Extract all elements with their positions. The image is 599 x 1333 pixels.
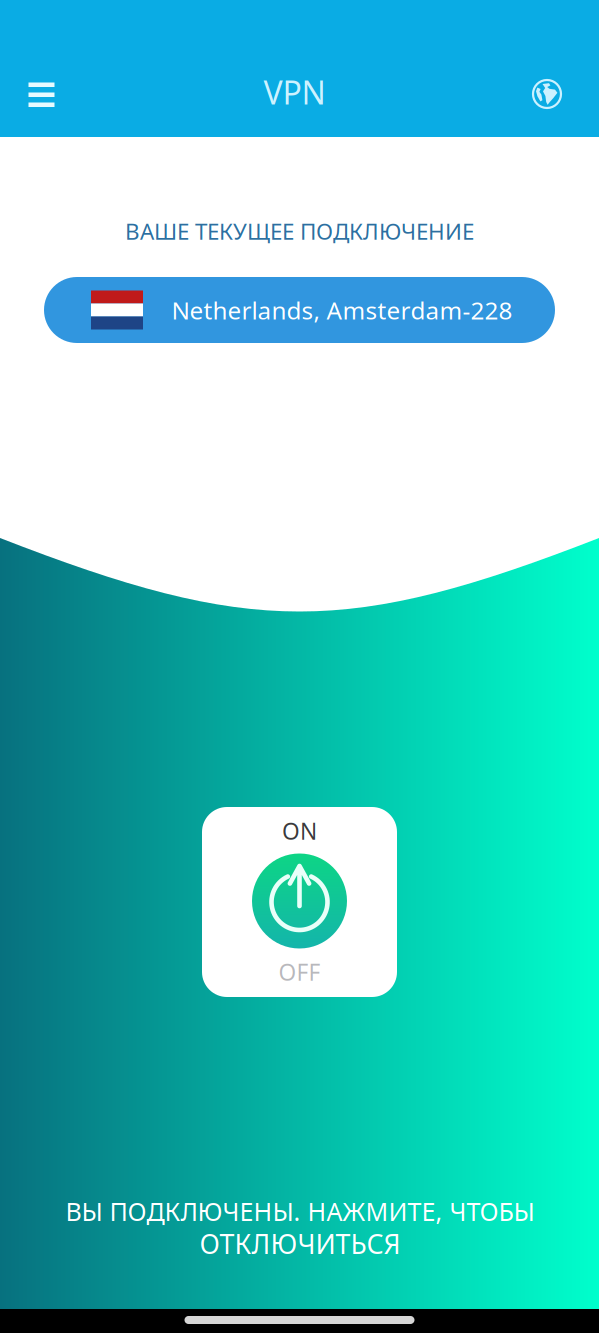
staticText: Netherlands, Amsterdam-228	[171, 293, 512, 327]
button[interactable]: Menu	[18, 71, 64, 117]
button[interactable]: Select region	[524, 71, 570, 117]
staticText: OFF	[278, 957, 320, 987]
button[interactable]: Netherlands, Amsterdam-228	[44, 277, 555, 343]
staticText: VPN	[263, 70, 325, 114]
staticText: ВЫ ПОДКЛЮЧЕНЫ. НАЖМИТЕ, ЧТОБЫ	[65, 1194, 534, 1228]
staticText: ОТКЛЮЧИТЬСЯ	[199, 1225, 400, 1262]
staticText: ВАШЕ ТЕКУЩЕЕ ПОДКЛЮЧЕНИЕ	[125, 216, 474, 246]
staticText: ON	[282, 816, 317, 846]
button[interactable]: ON	[202, 807, 397, 997]
